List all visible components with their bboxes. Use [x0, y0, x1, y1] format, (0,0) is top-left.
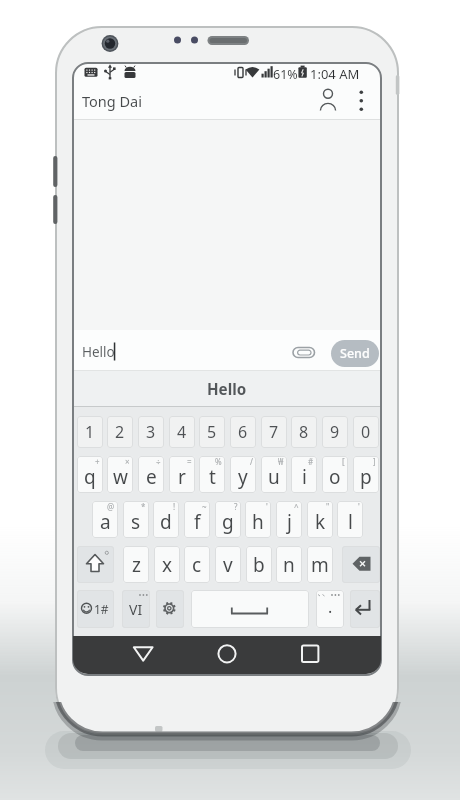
button[interactable]: 6 [230, 416, 256, 448]
staticText: 1# [94, 601, 109, 617]
button[interactable]: l [337, 501, 363, 538]
staticText: b [253, 552, 265, 578]
staticText: z [132, 552, 141, 578]
button[interactable]: k [307, 501, 333, 538]
staticText: " [326, 501, 330, 512]
staticText: VI [129, 600, 143, 619]
staticText: l [348, 509, 353, 535]
staticText: 3 [146, 421, 156, 443]
button[interactable]: Hello [74, 371, 380, 408]
staticText: h [252, 509, 264, 535]
staticText: 5 [207, 421, 217, 443]
button[interactable]: b [246, 546, 272, 583]
staticText: Hello [207, 379, 247, 400]
staticText: f [194, 509, 201, 535]
button[interactable] [123, 639, 163, 669]
staticText: y [238, 464, 248, 490]
button[interactable]: 1 [77, 416, 103, 448]
staticText: ? [234, 501, 238, 512]
staticText: ÷ [156, 456, 161, 467]
button[interactable]: r [169, 456, 195, 493]
button[interactable]: x [154, 546, 180, 583]
button[interactable] [156, 590, 184, 628]
button[interactable]: s [123, 501, 149, 538]
button[interactable]: u [261, 456, 287, 493]
button[interactable]: v [215, 546, 241, 583]
staticText: s [131, 509, 141, 535]
staticText: o [329, 464, 341, 490]
button[interactable]: m [307, 546, 333, 583]
button[interactable]: p [353, 456, 379, 493]
staticText: k [315, 509, 326, 535]
button[interactable]: a [92, 501, 118, 538]
button[interactable] [352, 84, 372, 116]
staticText: i [302, 464, 307, 490]
button[interactable]: g [215, 501, 241, 538]
button[interactable] [207, 639, 247, 669]
button[interactable]: d [153, 501, 179, 538]
button[interactable]: 0 [353, 416, 379, 448]
staticText: ₩ [278, 456, 284, 467]
staticText: 1 [85, 421, 95, 443]
staticText: @ [107, 501, 115, 512]
button[interactable]: i [291, 456, 317, 493]
button[interactable]: f [184, 501, 210, 538]
staticText: m [311, 552, 329, 578]
staticText: t [209, 464, 216, 490]
button[interactable]: 4 [169, 416, 195, 448]
button[interactable]: 8 [291, 416, 317, 448]
button[interactable]: c [184, 546, 210, 583]
button[interactable] [191, 590, 309, 628]
button[interactable] [314, 84, 342, 116]
staticText: 4 [177, 421, 187, 443]
button[interactable]: VI [122, 590, 150, 628]
button[interactable]: t [199, 456, 225, 493]
button[interactable]: 9 [322, 416, 348, 448]
staticText: 61% [273, 66, 298, 83]
staticText: / [250, 456, 253, 467]
button[interactable] [77, 546, 114, 583]
button[interactable]: z [123, 546, 149, 583]
staticText: r [178, 464, 186, 490]
button[interactable]: 5 [199, 416, 225, 448]
staticText: Hello [82, 343, 115, 361]
button[interactable]: h [245, 501, 271, 538]
button[interactable]: 1# [77, 590, 114, 628]
staticText: . [328, 596, 333, 618]
button[interactable]: 3 [138, 416, 164, 448]
staticText: 1:04 AM [310, 65, 360, 83]
staticText: ! [173, 501, 176, 512]
staticText: c [192, 552, 202, 578]
button[interactable]: e [138, 456, 164, 493]
button[interactable]: j [276, 501, 302, 538]
button[interactable]: 7 [261, 416, 287, 448]
staticText: % [215, 456, 222, 467]
button[interactable]: 2 [107, 416, 133, 448]
staticText: q [84, 464, 96, 490]
button[interactable] [74, 330, 380, 371]
button[interactable]: n [276, 546, 302, 583]
staticText: e [146, 464, 157, 490]
staticText: [ [342, 456, 345, 467]
button[interactable]: y [230, 456, 256, 493]
staticText: Tong Dai [82, 91, 142, 111]
staticText: = [187, 456, 192, 467]
button[interactable]: q [77, 456, 103, 493]
staticText: × [125, 456, 130, 467]
staticText: 0 [361, 421, 371, 443]
button[interactable]: w [107, 456, 133, 493]
staticText: ] [373, 456, 376, 467]
staticText: 8 [299, 421, 309, 443]
button[interactable]: o [322, 456, 348, 493]
staticText: Send [340, 345, 370, 362]
button[interactable] [290, 639, 330, 669]
button[interactable]: Send [331, 340, 379, 367]
staticText: w [113, 464, 128, 490]
staticText: u [268, 464, 280, 490]
button[interactable]: . [316, 590, 344, 628]
button[interactable] [342, 546, 380, 583]
staticText: d [160, 509, 172, 535]
button[interactable] [350, 590, 380, 628]
staticText: a [100, 509, 111, 535]
staticText: v [223, 552, 233, 578]
